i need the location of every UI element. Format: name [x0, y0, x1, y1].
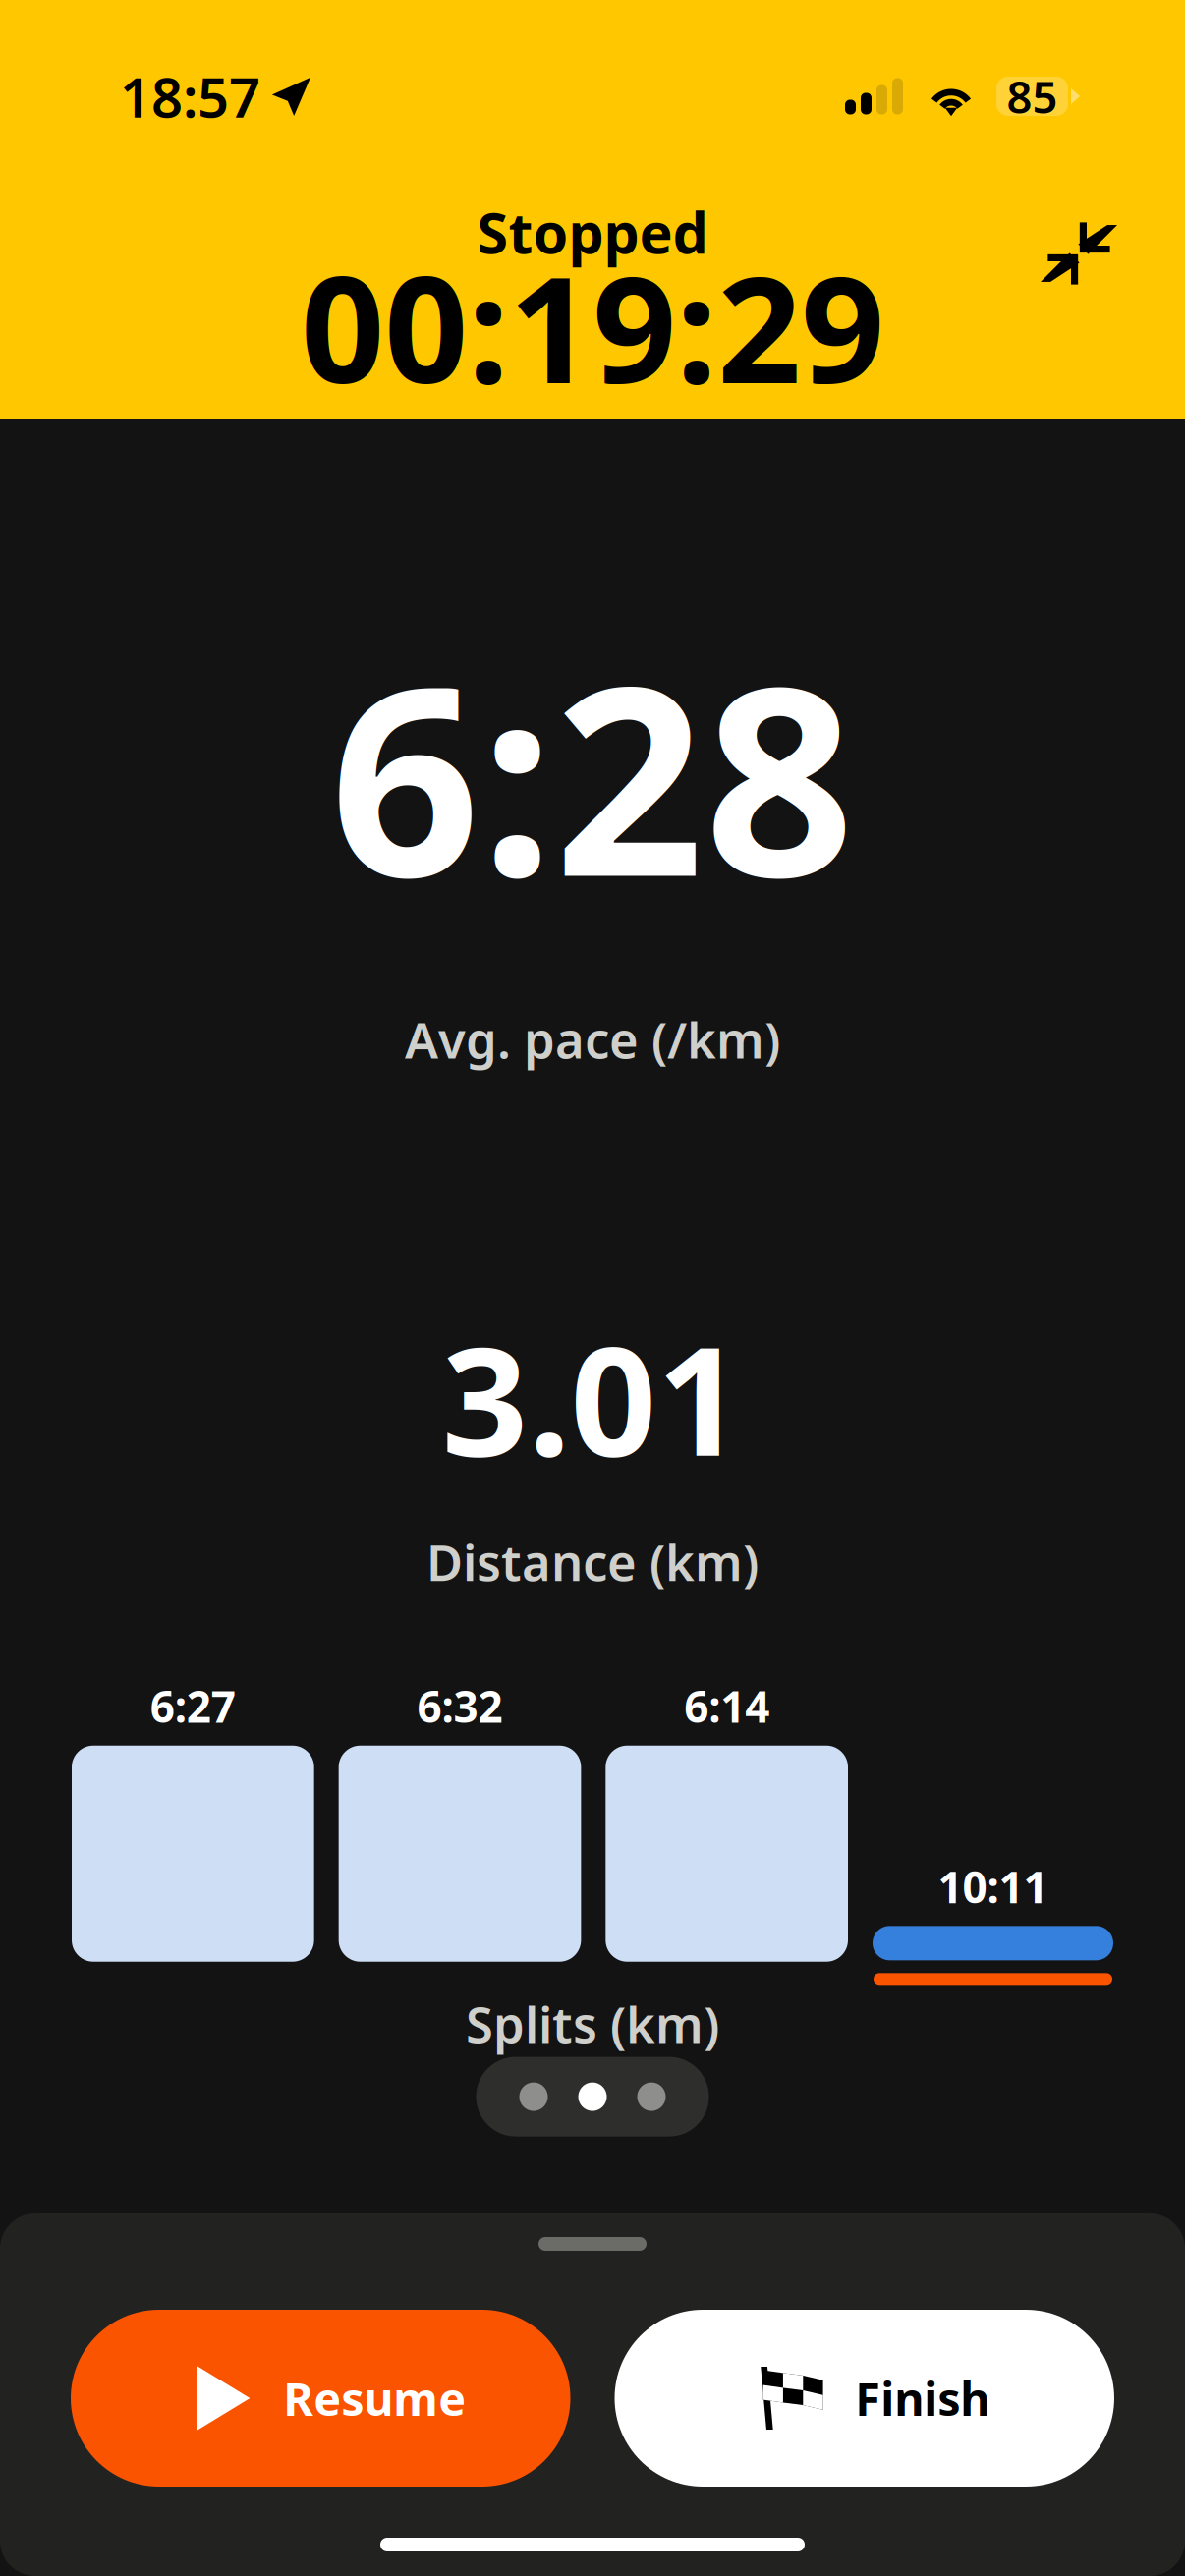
- staticText: Stopped: [477, 195, 708, 269]
- staticText: 6:28: [330, 600, 855, 948]
- staticText: Resume: [283, 2368, 466, 2429]
- staticText: Splits (km): [466, 1991, 719, 2057]
- staticText: 18:57: [120, 60, 260, 133]
- button[interactable]: Minimize: [1018, 193, 1140, 314]
- staticText: Finish: [855, 2368, 990, 2429]
- staticText: Distance (km): [426, 1529, 759, 1595]
- staticText: 85: [1007, 67, 1058, 126]
- staticText: 00:19:29: [301, 229, 884, 424]
- button[interactable]: Resume: [71, 2310, 570, 2487]
- staticText: 6:27: [150, 1677, 236, 1735]
- staticText: Avg. pace (/km): [405, 1006, 780, 1072]
- staticText: 6:32: [417, 1677, 503, 1735]
- staticText: 10:11: [938, 1858, 1048, 1915]
- staticText: 6:14: [684, 1677, 770, 1735]
- staticText: 3.01: [442, 1297, 743, 1497]
- button[interactable]: Finish: [615, 2310, 1114, 2487]
